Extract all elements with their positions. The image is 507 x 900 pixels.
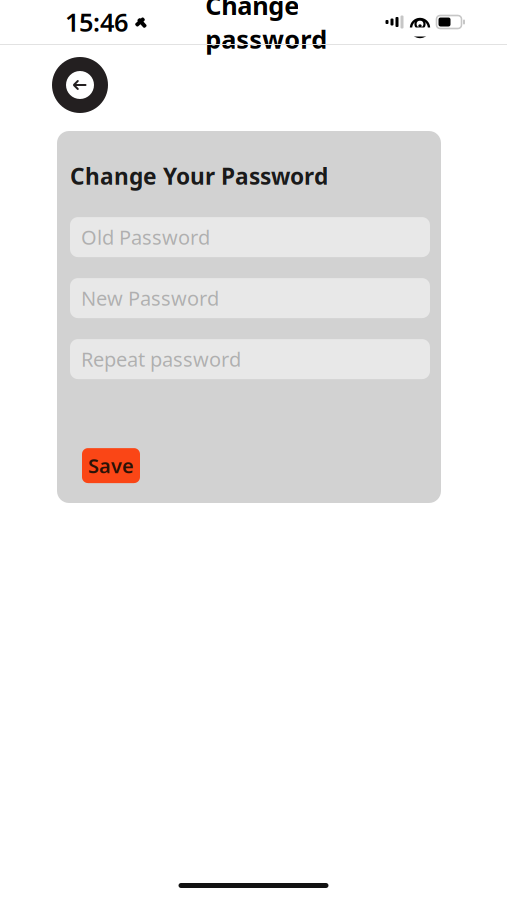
button[interactable]: Old Password — [70, 217, 430, 257]
button[interactable]: Repeat password — [70, 339, 430, 379]
button[interactable]: New Password — [70, 278, 430, 318]
staticText: Change password — [205, 0, 327, 56]
staticText: Old Password — [81, 224, 210, 250]
staticText: New Password — [81, 285, 219, 311]
button[interactable]: Save — [82, 448, 140, 483]
button[interactable]: Back — [52, 57, 108, 113]
staticText: Repeat password — [81, 346, 241, 372]
staticText: 15:46 — [65, 5, 128, 39]
staticText: Change Your Password — [70, 161, 328, 191]
staticText: Save — [88, 452, 134, 479]
